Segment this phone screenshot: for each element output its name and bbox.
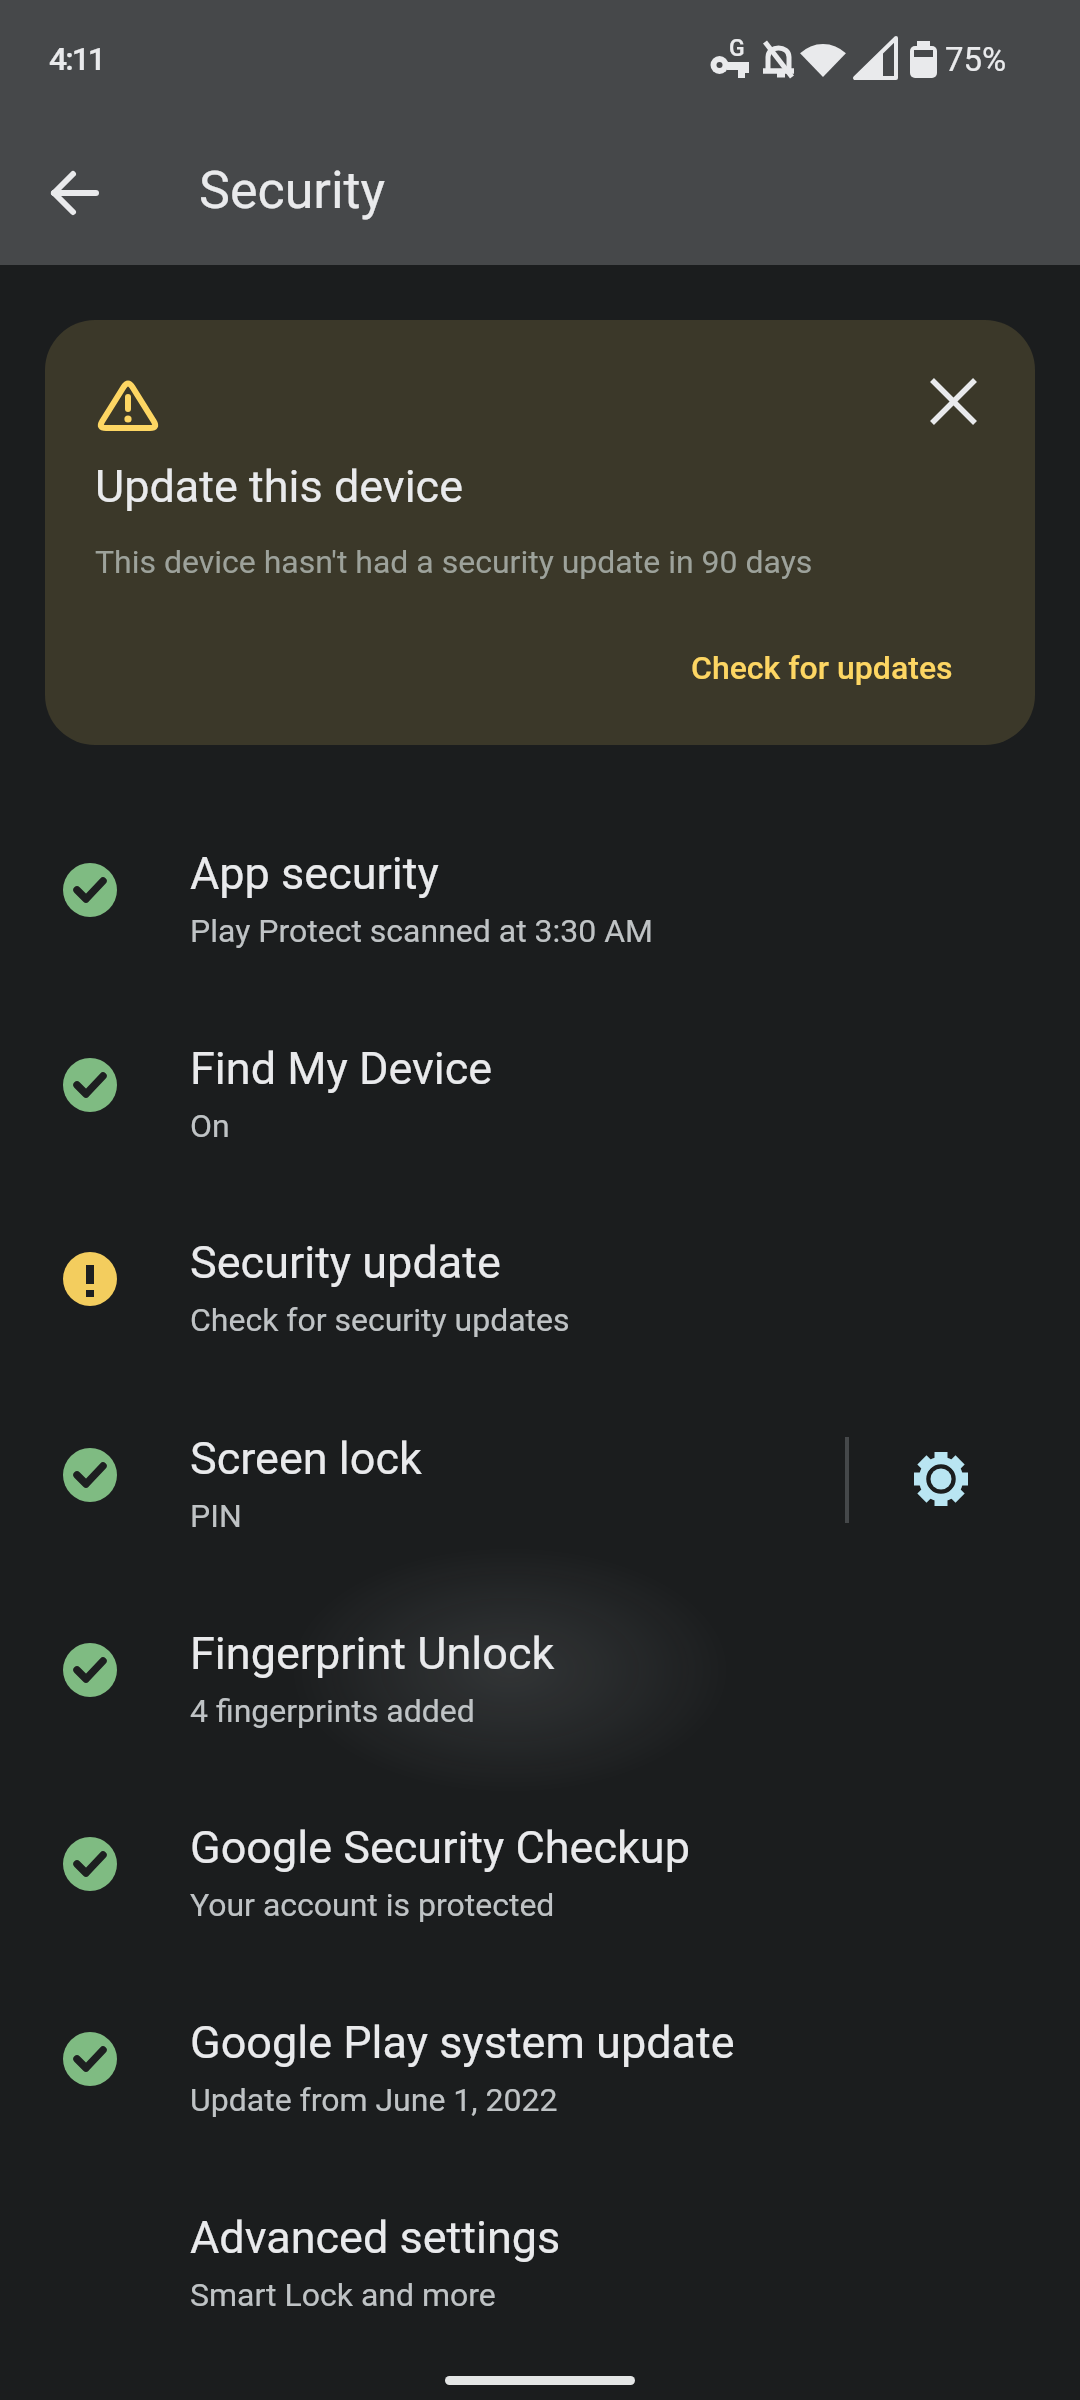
button[interactable]: App security	[0, 793, 1080, 988]
button[interactable]: Find My Device	[0, 988, 1080, 1183]
staticText: Smart Lock and more	[190, 2276, 496, 2314]
staticText: Google Play system update	[190, 2016, 735, 2069]
staticText: Update from June 1, 2022	[190, 2081, 558, 2119]
button[interactable]	[897, 1435, 985, 1523]
button[interactable]: Google Play system update	[0, 1962, 1080, 2157]
staticText: Security	[199, 160, 386, 221]
staticText: 4:11	[49, 40, 105, 78]
staticText: Check for security updates	[190, 1301, 570, 1339]
button[interactable]: Advanced settings	[0, 2157, 1080, 2352]
staticText: 4 fingerprints added	[190, 1692, 475, 1730]
staticText: App security	[190, 847, 439, 900]
button[interactable]	[908, 356, 999, 447]
button[interactable]: Screen lock	[0, 1378, 1080, 1573]
staticText: PIN	[190, 1497, 242, 1535]
button[interactable]	[27, 145, 123, 241]
staticText: Play Protect scanned at 3:30 AM	[190, 912, 654, 950]
staticText: Update this device	[95, 460, 463, 513]
button[interactable]: Fingerprint Unlock	[0, 1573, 1080, 1768]
staticText: Fingerprint Unlock	[190, 1627, 555, 1680]
staticText: 75%	[945, 40, 1007, 79]
staticText: On	[190, 1107, 230, 1145]
staticText: Google Security Checkup	[190, 1821, 690, 1874]
staticText: Your account is protected	[190, 1886, 555, 1924]
button[interactable]: Security update	[0, 1182, 1080, 1377]
button[interactable]: Google Security Checkup	[0, 1767, 1080, 1962]
staticText: Advanced settings	[190, 2211, 561, 2264]
staticText: Check for updates	[691, 649, 953, 687]
staticText: Screen lock	[190, 1432, 422, 1485]
button[interactable]: Update this device	[45, 320, 1035, 745]
staticText: G	[729, 35, 745, 62]
staticText: Security update	[190, 1236, 501, 1289]
button[interactable]: Check for updates	[691, 649, 953, 687]
staticText: Find My Device	[190, 1042, 493, 1095]
staticText: This device hasn't had a security update…	[95, 543, 813, 581]
